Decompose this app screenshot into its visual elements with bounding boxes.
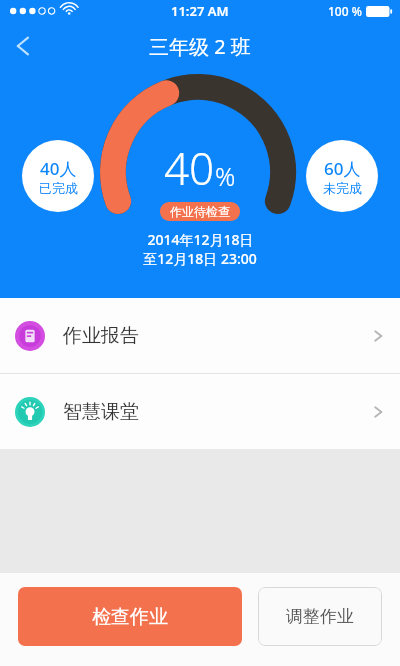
button[interactable]: 作业报告	[0, 298, 400, 373]
staticText: 三年级 2 班	[149, 33, 251, 60]
staticText: 100 %	[328, 3, 362, 19]
staticText: 作业待检查	[170, 204, 230, 219]
staticText: 未完成	[323, 180, 362, 196]
staticText: 2014年12月18日	[147, 230, 254, 249]
staticText: 40	[164, 138, 215, 198]
staticText: 检查作业	[92, 605, 168, 629]
button[interactable]: 检查作业	[18, 587, 242, 646]
staticText: 至12月18日 23:00	[143, 249, 257, 268]
button[interactable]: Back	[0, 22, 48, 70]
staticText: 60人	[324, 157, 361, 180]
staticText: 智慧课堂	[63, 400, 139, 424]
button[interactable]: 调整作业	[258, 587, 382, 646]
button[interactable]: 智慧课堂	[0, 374, 400, 449]
staticText: 40人	[40, 157, 77, 180]
staticText: 11:27 AM	[171, 2, 229, 20]
staticText: %	[215, 159, 236, 193]
staticText: 已完成	[39, 180, 78, 196]
staticText: 作业报告	[63, 324, 139, 348]
staticText: 调整作业	[286, 606, 354, 627]
